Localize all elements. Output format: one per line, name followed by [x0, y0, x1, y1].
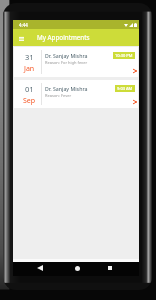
staticText: 31	[25, 52, 34, 62]
staticText: Reason: For high fever	[45, 60, 88, 65]
staticText: My Appointments	[37, 33, 90, 42]
staticText: Jan	[24, 64, 35, 74]
button[interactable]: 31	[14, 47, 138, 77]
button[interactable]: Back	[34, 262, 46, 274]
button[interactable]: Home	[71, 262, 83, 274]
staticText: Dr. Sanjay Mishra	[45, 52, 88, 59]
staticText: Reason: Fever	[45, 93, 72, 98]
staticText: Dr. Sanjay Mishra	[45, 85, 88, 92]
staticText: 01	[25, 84, 34, 94]
staticText: Sep	[23, 96, 36, 106]
button[interactable]: Menu	[16, 33, 26, 43]
staticText: 4:44	[19, 22, 28, 28]
button[interactable]: 01	[14, 80, 138, 108]
staticText: 10:30 PM	[115, 53, 133, 58]
button[interactable]: Recents	[104, 262, 116, 274]
staticText: 9:03 AM	[117, 86, 133, 91]
